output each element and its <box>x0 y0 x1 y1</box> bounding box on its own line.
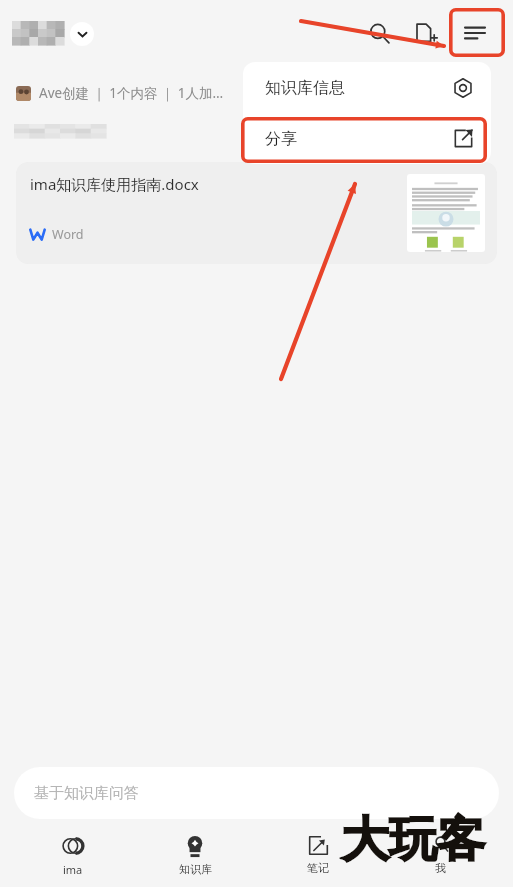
button[interactable]: 知识库信息 <box>243 62 491 113</box>
staticText: 我 <box>435 861 446 875</box>
staticText: ima知识库使用指南.docx <box>30 174 199 194</box>
button[interactable]: ima <box>23 831 123 877</box>
staticText: 知识库信息 <box>265 78 345 98</box>
button[interactable]: 基于知识库问答 <box>14 767 499 819</box>
button[interactable]: 知识库 <box>145 831 245 876</box>
staticText: ima <box>63 862 83 877</box>
staticText: 知识库 <box>179 862 212 876</box>
button[interactable]: Menu <box>456 14 494 52</box>
staticText: 分享 <box>265 129 297 149</box>
button[interactable]: Expand knowledge base list <box>70 22 94 46</box>
button[interactable]: 笔记 <box>268 831 368 875</box>
button[interactable]: ima知识库使用指南.docx <box>16 162 497 264</box>
staticText: 基于知识库问答 <box>34 784 139 803</box>
staticText: 笔记 <box>307 861 329 875</box>
staticText: Word <box>52 226 84 243</box>
staticText: 大玩客 <box>341 810 485 870</box>
button[interactable]: 我 <box>390 831 490 875</box>
button[interactable]: Search <box>362 16 396 50</box>
staticText: Ave创建 ｜ 1个内容 ｜ 1人加… <box>39 84 224 102</box>
button[interactable]: Add document <box>410 16 444 50</box>
button[interactable]: 分享 <box>243 113 491 164</box>
